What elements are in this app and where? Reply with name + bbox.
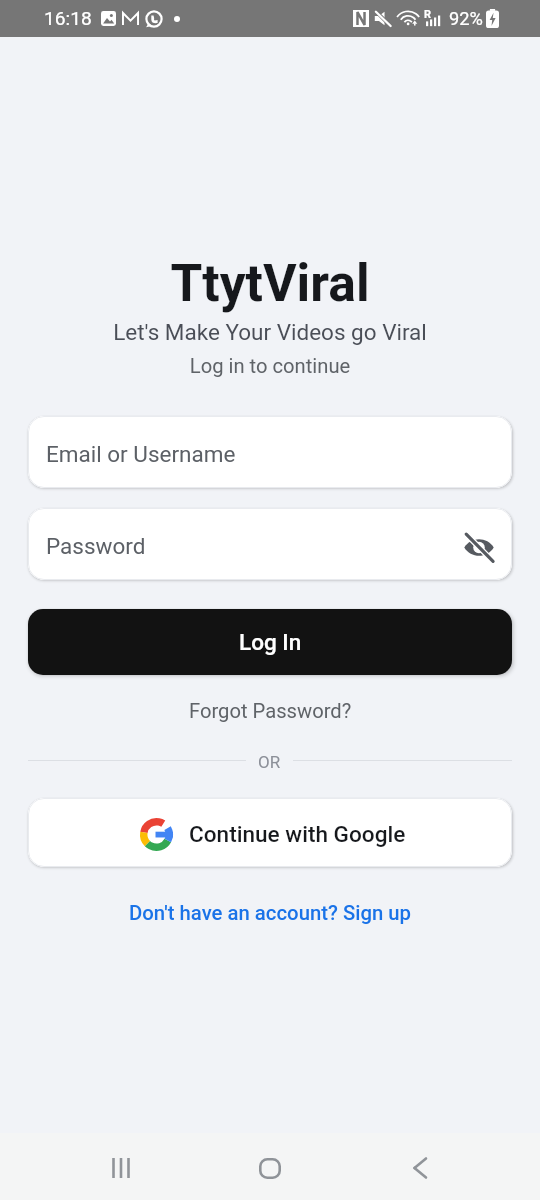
- staticText: Log in to continue: [0, 354, 540, 378]
- button[interactable]: Log In: [28, 609, 512, 675]
- button[interactable]: Password: [28, 508, 512, 580]
- staticText: Email or Username: [46, 441, 236, 467]
- staticText: R: [424, 8, 432, 21]
- staticText: Continue with Google: [189, 821, 406, 847]
- staticText: Don't have an account? Sign up: [129, 901, 411, 925]
- button[interactable]: Don't have an account? Sign up: [113, 896, 427, 930]
- staticText: OR: [258, 752, 281, 772]
- button[interactable]: Forgot Password?: [173, 693, 368, 729]
- staticText: 92%: [449, 8, 483, 29]
- staticText: Log In: [239, 629, 302, 655]
- button[interactable]: Continue with Google: [28, 798, 512, 867]
- button[interactable]: Show password: [455, 523, 503, 571]
- staticText: Forgot Password?: [189, 699, 352, 723]
- staticText: TtytViral: [0, 253, 540, 313]
- staticText: Password: [46, 533, 146, 559]
- button[interactable]: Recents: [93, 1140, 149, 1196]
- button[interactable]: Home: [242, 1140, 298, 1196]
- button[interactable]: Email or Username: [28, 416, 512, 488]
- staticText: Let's Make Your Videos go Viral: [0, 319, 540, 345]
- staticText: 16:18: [44, 7, 92, 30]
- button[interactable]: Back: [391, 1140, 447, 1196]
